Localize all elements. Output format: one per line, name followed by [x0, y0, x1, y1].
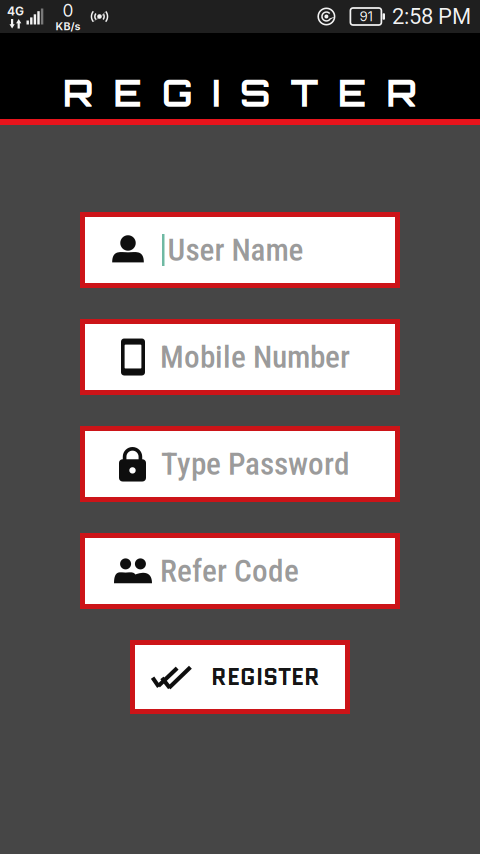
staticText: 2:58 PM — [392, 4, 471, 29]
staticText: REGISTER — [211, 660, 320, 694]
button[interactable]: Refer Code — [80, 533, 400, 609]
button[interactable]: Type Password — [80, 426, 400, 502]
staticText: KB/s — [55, 20, 80, 33]
staticText: Type Password — [161, 446, 350, 482]
staticText: REGISTER — [63, 69, 417, 116]
staticText: Refer Code — [160, 553, 299, 589]
button[interactable]: Mobile Number — [80, 319, 400, 395]
staticText: 91 — [359, 8, 372, 24]
staticText: 0 — [62, 0, 73, 21]
button[interactable]: REGISTER — [130, 640, 350, 714]
staticText: Mobile Number — [160, 339, 350, 375]
button[interactable]: User Name — [80, 212, 400, 288]
staticText: 4G — [7, 4, 24, 18]
staticText: User Name — [167, 232, 303, 268]
